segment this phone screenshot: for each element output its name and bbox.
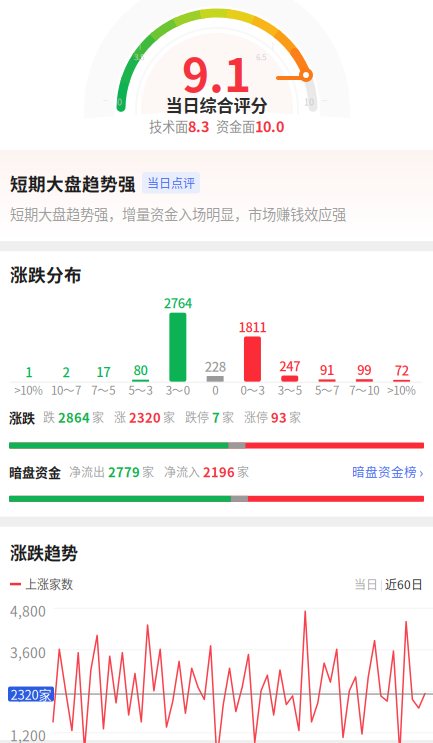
staticText: — (103, 95, 108, 104)
staticText: 短期大盘趋势强 (10, 170, 136, 195)
staticText: 当日 (354, 575, 378, 593)
staticText: 技术面 (149, 116, 188, 135)
staticText: 家 (142, 463, 154, 480)
staticText: 家 (222, 408, 234, 426)
staticText: | (272, 40, 274, 50)
staticText: 2864 (58, 408, 90, 426)
staticText: 上涨家数 (25, 575, 73, 593)
staticText: 10～7 (51, 381, 81, 398)
staticText: 3.5 (134, 51, 144, 63)
staticText: 3～5 (278, 381, 302, 398)
staticText: — (322, 95, 327, 104)
staticText: | (139, 40, 141, 50)
staticText: 家 (237, 463, 249, 480)
staticText: 7～10 (349, 381, 379, 398)
staticText: 当日综合评分 (165, 92, 267, 117)
staticText: 跌 (43, 408, 55, 426)
staticText: 当日点评 (147, 174, 195, 191)
staticText: 7 (212, 408, 220, 426)
button[interactable]: 当日 (354, 575, 378, 593)
staticText: 2764 (164, 293, 192, 312)
staticText: 2,400 (10, 684, 46, 704)
staticText: 72 (395, 360, 409, 379)
staticText: 涨跌分布 (10, 261, 82, 287)
staticText: >10% (387, 381, 416, 398)
staticText: 6.5 (256, 51, 266, 63)
staticText: 80 (133, 360, 147, 379)
staticText: 1 (25, 362, 32, 381)
staticText: 7～5 (91, 381, 115, 398)
staticText: | (378, 577, 385, 591)
staticText: 暗盘资金 (9, 462, 61, 481)
staticText: 涨跌 (9, 408, 35, 426)
staticText: 10 (304, 95, 314, 108)
staticText: 17 (96, 362, 110, 381)
staticText: 5～3 (128, 381, 152, 398)
staticText: 家 (92, 408, 104, 426)
staticText: 暗盘资金榜 (352, 463, 417, 481)
staticText: 2196 (203, 462, 235, 481)
staticText: 8.3 (188, 116, 209, 136)
staticText: 91 (320, 360, 334, 379)
staticText: 净流出 (69, 463, 105, 480)
staticText: 0 (117, 95, 122, 108)
staticText: 2779 (108, 462, 140, 481)
staticText: 3,600 (10, 642, 46, 662)
staticText: 0 (212, 381, 218, 398)
staticText: 4,800 (10, 601, 46, 621)
staticText: 1811 (238, 317, 266, 336)
staticText: 涨停 (244, 408, 268, 426)
staticText: >10% (14, 381, 43, 398)
staticText: 2320家 (10, 685, 51, 703)
staticText: › (419, 461, 423, 482)
staticText: 家 (289, 408, 301, 426)
staticText: 涨跌趋势 (10, 540, 78, 564)
staticText: 247 (279, 356, 300, 375)
staticText: 10.0 (255, 116, 284, 136)
staticText: 3～0 (166, 381, 190, 398)
staticText: 9.1 (182, 39, 251, 105)
staticText: 1,200 (10, 725, 46, 743)
staticText: 99 (357, 360, 371, 379)
staticText: 228 (205, 357, 226, 375)
staticText: 2320 (129, 408, 161, 426)
button[interactable]: 近60日 (385, 575, 423, 593)
staticText: 5～7 (315, 381, 339, 398)
staticText: 涨 (114, 408, 126, 426)
staticText: 净流入 (164, 463, 200, 480)
staticText: 0～3 (240, 381, 264, 398)
staticText: 家 (163, 408, 175, 426)
button[interactable]: 暗盘资金榜 (352, 461, 423, 482)
staticText: 短期大盘趋势强，增量资金入场明显，市场赚钱效应强 (10, 203, 346, 224)
staticText: 近60日 (385, 575, 423, 593)
staticText: 跌停 (185, 408, 209, 426)
staticText: 2 (62, 362, 69, 381)
staticText: 93 (271, 408, 287, 426)
staticText: 资金面 (216, 116, 255, 135)
